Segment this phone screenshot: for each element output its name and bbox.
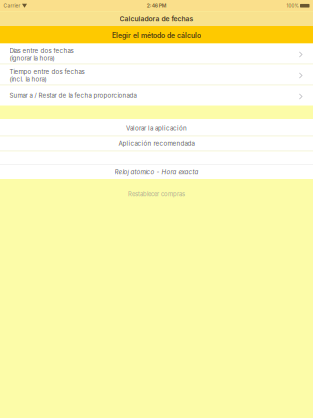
staticText: 100% (286, 3, 298, 8)
staticText: (incl. la hora) (9, 75, 46, 83)
button[interactable]: Tiempo entre dos fechas (0, 64, 313, 84)
button[interactable]: Restablecer compras (0, 189, 313, 199)
staticText: Tiempo entre dos fechas (9, 68, 84, 75)
staticText: Días entre dos fechas (9, 47, 73, 54)
staticText: Aplicación recomendada (118, 140, 194, 147)
button[interactable]: Aplicación recomendada (0, 136, 313, 150)
staticText: Elegir el método de cálculo (112, 31, 201, 40)
staticText: Valorar la aplicación (126, 124, 187, 132)
button[interactable]: Valorar la aplicación (0, 119, 313, 135)
button[interactable]: Días entre dos fechas (0, 43, 313, 63)
staticText: Sumar a / Restar de la fecha proporciona… (9, 92, 136, 99)
staticText: Calculadora de fechas (119, 15, 193, 23)
staticText: Carrier (3, 3, 20, 9)
staticText: Restablecer compras (128, 190, 185, 198)
staticText: (ignorar la hora) (9, 54, 54, 62)
button[interactable]: Reloj atómico - Hora exacta (0, 165, 313, 179)
button[interactable]: Sumar a / Restar de la fecha proporciona… (0, 85, 313, 105)
staticText: 2:46 PM (147, 3, 167, 9)
staticText: Reloj atómico - Hora exacta (114, 168, 198, 176)
